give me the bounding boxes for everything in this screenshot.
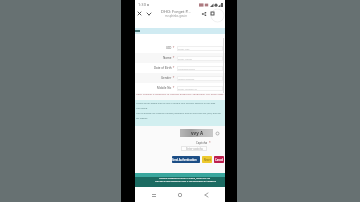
button[interactable]: Expand (144, 9, 153, 18)
staticText: Note: Consent is necessary to Aadhaar ba… (136, 92, 225, 95)
button[interactable]: Refresh captcha (215, 131, 219, 135)
staticText: 1:30 (138, 2, 146, 7)
button[interactable]: Back (199, 188, 213, 202)
staticText: DHO: Forget P... (161, 9, 191, 14)
staticText: Content Powered by SPHC N-Portal, ABCD P… (159, 177, 211, 180)
staticText: my identity. (136, 117, 148, 120)
staticText: vvy A (191, 130, 203, 136)
staticText: Enter UID (178, 47, 190, 50)
button[interactable]: Tabs (208, 9, 217, 18)
button[interactable]: Home (173, 188, 187, 202)
staticText: Gender (161, 76, 172, 80)
button[interactable]: Enter Name (177, 56, 223, 61)
staticText: Enter captcha (186, 147, 203, 151)
staticText: * (172, 76, 175, 80)
button[interactable]: Calendar/DOB (177, 66, 223, 71)
button[interactable]: Close (135, 9, 144, 18)
button[interactable]: Enter captcha (181, 146, 207, 151)
button[interactable]: Reset (202, 156, 212, 163)
staticText: * (172, 56, 175, 60)
staticText: Enter Mobile No (178, 87, 198, 90)
button[interactable]: Cancel (214, 156, 224, 163)
staticText: m.sphinks.gov.in (165, 14, 188, 18)
button[interactable]: Recent apps (147, 188, 161, 202)
staticText: Select Gender (178, 77, 195, 80)
button[interactable]: Select Gender (177, 76, 223, 81)
staticText: Send Authentication Pin (172, 158, 200, 162)
staticText: Enter Name (178, 57, 192, 60)
staticText: I am being. (136, 107, 148, 110)
staticText: * (209, 141, 211, 145)
staticText: I am to provide my Aadhaar Number, Biome… (136, 112, 221, 115)
staticText: Date of Birth (154, 66, 172, 70)
button[interactable]: Share (199, 9, 208, 18)
staticText: Mobile No (157, 86, 172, 90)
staticText: Cancel (215, 158, 224, 162)
staticText: Captcha (196, 141, 209, 145)
button[interactable]: Enter Mobile No (177, 86, 223, 91)
staticText: * (172, 86, 175, 90)
staticText: * (172, 46, 175, 50)
staticText: I verify and all aware that my info is u… (136, 102, 216, 105)
staticText: Name (163, 56, 172, 60)
staticText: UID (166, 46, 172, 50)
button[interactable]: Send Authentication Pin (172, 156, 200, 163)
staticText: * (172, 66, 175, 70)
staticText: Calendar/DOB (178, 67, 195, 70)
staticText: Reset (204, 158, 211, 162)
button[interactable]: Enter UID (177, 46, 223, 51)
staticText: This site is best viewed in 1024 x 768 r… (155, 180, 216, 183)
